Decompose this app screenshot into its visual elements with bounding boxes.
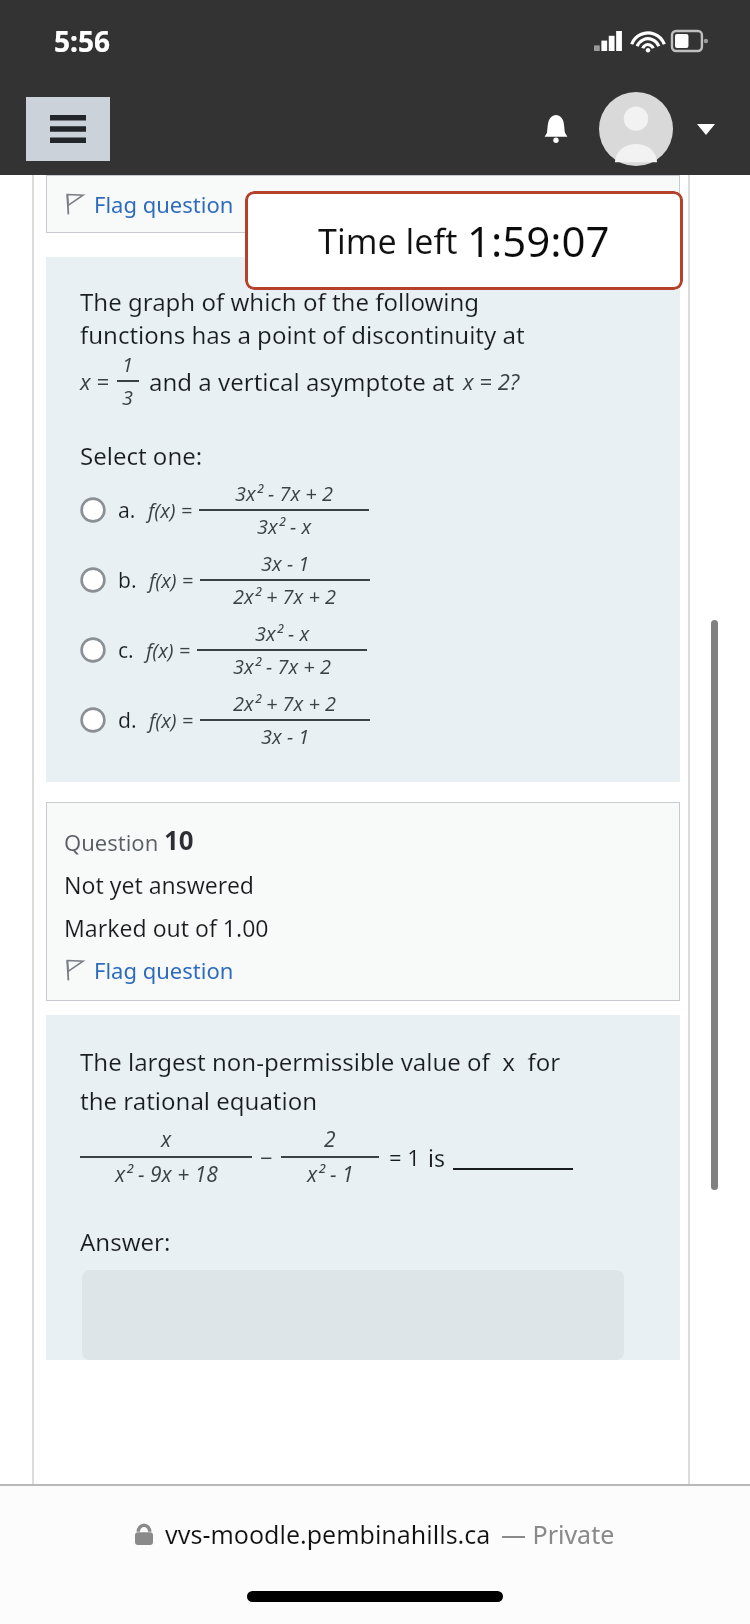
- staticText: is: [428, 1142, 445, 1173]
- staticText: 3x² − x: [257, 513, 312, 540]
- staticText: Time left: [318, 218, 467, 264]
- button[interactable]: b.: [46, 548, 680, 612]
- staticText: 2x² + 7x + 2: [233, 690, 337, 717]
- button[interactable]: Menu: [26, 97, 110, 161]
- staticText: 3x² − 7x + 2: [235, 480, 333, 507]
- staticText: 1:59:07: [467, 212, 610, 269]
- staticText: Marked out of 1.00: [64, 912, 269, 943]
- staticText: The graph of which of the following: [80, 285, 480, 318]
- staticText: x² − 1: [307, 1160, 354, 1189]
- staticText: f(x) =: [149, 707, 194, 734]
- staticText: — Private: [501, 1517, 615, 1551]
- button[interactable]: Time left: [245, 191, 683, 290]
- staticText: 3x² − 7x + 2: [233, 653, 331, 680]
- staticText: functions has a point of discontinuity a…: [80, 318, 525, 351]
- button[interactable]: c.: [46, 618, 680, 682]
- staticText: vvs-moodle.pembinahills.ca: [165, 1517, 491, 1551]
- staticText: x = 2?: [463, 366, 520, 396]
- staticText: 3x − 1: [261, 550, 310, 577]
- staticText: The largest non-permissible value of x f…: [80, 1045, 561, 1078]
- staticText: Select one:: [80, 439, 203, 472]
- staticText: 10: [164, 822, 194, 857]
- staticText: f(x) =: [148, 497, 193, 524]
- staticText: f(x) =: [149, 567, 194, 594]
- staticText: x² − 9x + 18: [115, 1160, 218, 1189]
- staticText: 3x − 1: [261, 723, 310, 750]
- staticText: a.: [118, 496, 136, 525]
- button[interactable]: vvs-moodle.pembinahills.ca: [135, 1517, 615, 1551]
- button[interactable]: a.: [46, 478, 680, 542]
- button[interactable]: More: [686, 109, 726, 149]
- button[interactable]: Account: [598, 91, 674, 167]
- button[interactable]: Notifications: [528, 101, 584, 157]
- button[interactable]: d.: [46, 688, 680, 752]
- staticText: Question: [64, 827, 164, 857]
- staticText: 5:56: [54, 22, 110, 60]
- staticText: −: [260, 1142, 273, 1172]
- staticText: b.: [118, 566, 137, 595]
- staticText: c.: [118, 636, 134, 665]
- staticText: Answer:: [80, 1225, 171, 1258]
- staticText: 3: [122, 384, 134, 411]
- staticText: 2: [324, 1125, 336, 1154]
- staticText: = 1: [389, 1142, 420, 1172]
- staticText: 1: [122, 351, 134, 378]
- staticText: and a vertical asymptote at: [149, 365, 455, 398]
- staticText: Flag question: [94, 955, 234, 985]
- staticText: 3x² − x: [255, 620, 310, 647]
- button[interactable]: Flag question: [64, 189, 234, 219]
- staticText: Flag question: [94, 189, 234, 219]
- staticText: x =: [80, 366, 109, 396]
- staticText: d.: [118, 706, 137, 735]
- staticText: x: [161, 1125, 172, 1154]
- staticText: Not yet answered: [64, 869, 255, 900]
- staticText: f(x) =: [146, 637, 191, 664]
- button[interactable]: Flag question: [64, 955, 234, 985]
- staticText: 2x² + 7x + 2: [233, 583, 337, 610]
- staticText: the rational equation: [80, 1084, 318, 1117]
